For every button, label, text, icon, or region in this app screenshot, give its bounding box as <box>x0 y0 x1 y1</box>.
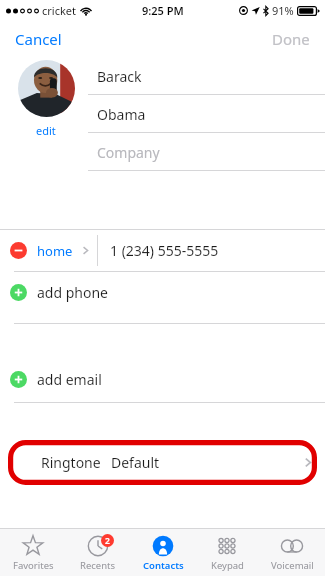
staticText: Ringtone <box>41 453 101 472</box>
button[interactable]: Obama <box>88 95 325 133</box>
staticText: add email <box>37 370 102 389</box>
staticText: Keypad <box>211 559 244 572</box>
button[interactable]: Cancel <box>0 22 77 56</box>
staticText: home <box>37 242 73 260</box>
staticText: Default <box>111 453 160 472</box>
button[interactable]: add email <box>0 359 325 399</box>
staticText: Text Tone <box>41 534 104 553</box>
button[interactable]: Company <box>88 133 325 171</box>
staticText: 9:25 PM <box>142 3 184 18</box>
button[interactable]: Ringtone <box>0 442 325 482</box>
button[interactable]: Barack <box>88 57 325 95</box>
button[interactable]: edit <box>31 121 61 140</box>
button[interactable]: Remove phone number <box>0 230 325 271</box>
button[interactable]: Voicemail <box>260 529 324 576</box>
staticText: Barack <box>97 67 142 86</box>
button[interactable]: 2 <box>66 529 130 576</box>
button[interactable]: Contacts <box>131 529 195 576</box>
button[interactable]: Done <box>257 22 325 56</box>
staticText: Default <box>111 534 160 553</box>
other: Remove phone number <box>10 242 27 259</box>
button[interactable]: Keypad <box>195 529 259 576</box>
staticText: Favorites <box>13 559 54 572</box>
staticText: Obama <box>97 105 146 124</box>
staticText: 2 <box>105 535 110 547</box>
staticText: edit <box>36 123 56 138</box>
staticText: Contacts <box>143 559 184 572</box>
staticText: add phone <box>37 283 108 302</box>
staticText: cricket <box>42 3 76 18</box>
staticText: 1 (234) 555-5555 <box>110 241 219 260</box>
button[interactable]: Text Tone <box>0 523 325 563</box>
staticText: Done <box>272 29 310 49</box>
staticText: Voicemail <box>271 559 314 572</box>
staticText: Company <box>97 143 160 162</box>
staticText: Cancel <box>15 29 62 49</box>
button[interactable]: add phone <box>0 272 325 312</box>
staticText: Recents <box>80 559 116 572</box>
button[interactable]: Edit contact photo <box>18 60 75 117</box>
staticText: 91% <box>272 3 294 18</box>
button[interactable]: Favorites <box>1 529 65 576</box>
